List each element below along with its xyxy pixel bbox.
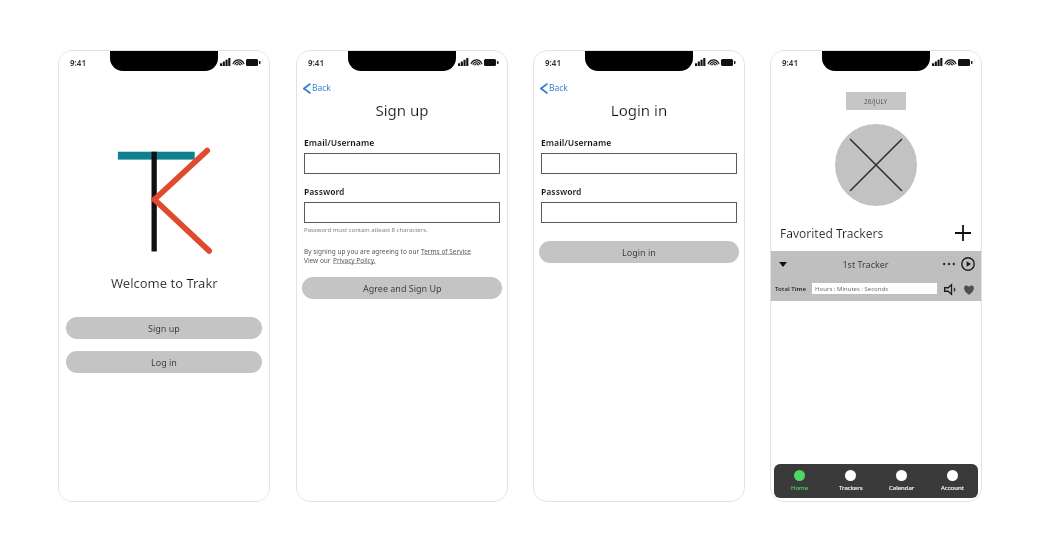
staticText: Trackers bbox=[839, 484, 863, 492]
button[interactable]: Collapse bbox=[776, 257, 790, 271]
staticText: Favorited Trackers bbox=[780, 225, 952, 241]
staticText: Hours : Minutes : Seconds bbox=[812, 285, 889, 293]
button[interactable] bbox=[304, 153, 500, 174]
staticText: View our bbox=[304, 256, 333, 265]
button[interactable]: More options bbox=[941, 256, 957, 272]
staticText: Back bbox=[549, 82, 568, 94]
staticText: By signing up you are agreeing to our bbox=[304, 247, 421, 256]
button[interactable]: 26/JULY bbox=[846, 92, 906, 110]
staticText: Login in bbox=[533, 100, 745, 120]
staticText: Password bbox=[304, 186, 345, 198]
button[interactable] bbox=[541, 202, 737, 223]
staticText: Account bbox=[941, 484, 964, 492]
button[interactable]: Calendar bbox=[876, 464, 927, 498]
staticText: Agree and Sign Up bbox=[363, 282, 442, 294]
staticText: Email/Username bbox=[541, 137, 612, 149]
button[interactable]: Privacy Policy. bbox=[333, 256, 376, 265]
staticText: 9:41 bbox=[308, 57, 324, 68]
button[interactable] bbox=[304, 202, 500, 223]
staticText: Log in bbox=[151, 356, 177, 368]
staticText: 9:41 bbox=[70, 57, 86, 68]
button[interactable]: Collapse bbox=[770, 251, 982, 301]
button[interactable]: Log in bbox=[66, 351, 262, 373]
button[interactable]: Terms of Service bbox=[421, 247, 471, 256]
staticText: Welcome to Trakr bbox=[111, 274, 218, 292]
button[interactable]: Agree and Sign Up bbox=[302, 277, 502, 299]
staticText: Back bbox=[312, 82, 331, 94]
button[interactable]: Add tracker bbox=[952, 222, 974, 244]
button[interactable]: Sound bbox=[942, 281, 958, 297]
staticText: Login in bbox=[622, 246, 656, 258]
button[interactable]: Play tracker bbox=[960, 256, 976, 272]
staticText: Calendar bbox=[889, 484, 915, 492]
staticText: 26/JULY bbox=[864, 97, 888, 106]
staticText: Sign up bbox=[148, 322, 180, 334]
button[interactable]: Home bbox=[774, 464, 825, 498]
button[interactable]: Trackers bbox=[825, 464, 876, 498]
staticText: 9:41 bbox=[782, 57, 798, 68]
button[interactable]: Account bbox=[927, 464, 978, 498]
staticText: Total Time bbox=[775, 285, 807, 293]
staticText: Sign up bbox=[296, 100, 508, 120]
button[interactable]: Favorite bbox=[961, 281, 977, 297]
staticText: Password must contain atleast 8 characte… bbox=[304, 226, 428, 234]
button[interactable]: Back bbox=[302, 80, 333, 96]
button[interactable]: Sign up bbox=[66, 317, 262, 339]
button[interactable]: Hours : Minutes : Seconds bbox=[812, 283, 937, 294]
staticText: Password bbox=[541, 186, 582, 198]
staticText: 1st Tracker bbox=[790, 258, 941, 270]
button[interactable]: Tracker timer bbox=[835, 124, 917, 206]
button[interactable] bbox=[541, 153, 737, 174]
staticText: 9:41 bbox=[545, 57, 561, 68]
button[interactable]: Back bbox=[539, 80, 570, 96]
button[interactable]: Login in bbox=[539, 241, 739, 263]
staticText: Email/Username bbox=[304, 137, 375, 149]
staticText: Home bbox=[791, 484, 809, 492]
